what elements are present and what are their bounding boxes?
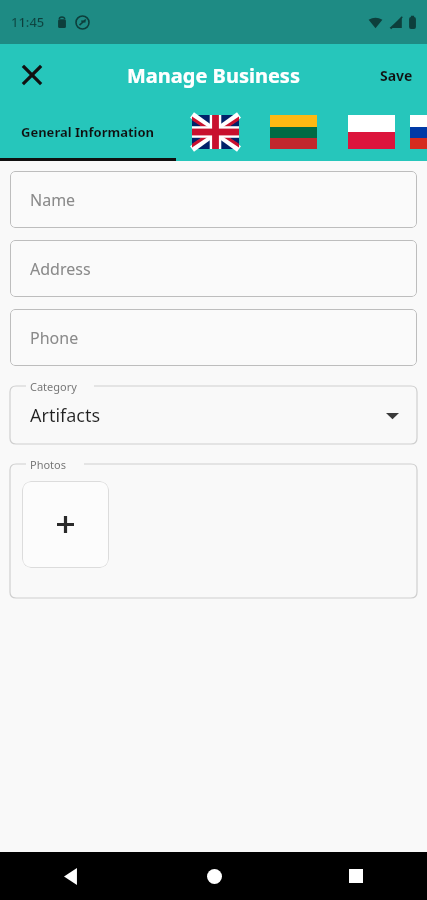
staticText: Artifacts <box>30 403 386 428</box>
button[interactable]: Language <box>176 106 254 161</box>
button[interactable]: Artifacts <box>10 386 417 444</box>
staticText: Name <box>30 189 76 211</box>
staticText: Address <box>30 258 91 280</box>
button[interactable]: Close <box>8 51 56 99</box>
staticText: Save <box>380 66 413 85</box>
staticText: Manage Business <box>127 62 300 89</box>
staticText: Category <box>30 379 77 394</box>
button[interactable]: Recents <box>285 852 427 900</box>
staticText: 11:45 <box>11 13 45 31</box>
button[interactable]: Name <box>10 171 417 228</box>
button[interactable]: Language <box>332 106 410 161</box>
staticText: Phone <box>30 327 79 349</box>
button[interactable]: Home <box>143 852 285 900</box>
button[interactable]: Russian <box>410 106 427 161</box>
button[interactable]: Save <box>366 56 427 95</box>
button[interactable]: Language <box>254 106 332 161</box>
staticText: General Information <box>21 123 155 141</box>
button[interactable]: Add photo <box>22 481 109 568</box>
button[interactable]: General Information <box>0 106 176 161</box>
button[interactable]: Address <box>10 240 417 297</box>
staticText: Photos <box>30 457 67 472</box>
button[interactable]: Phone <box>10 309 417 366</box>
button[interactable]: Back <box>0 852 143 900</box>
